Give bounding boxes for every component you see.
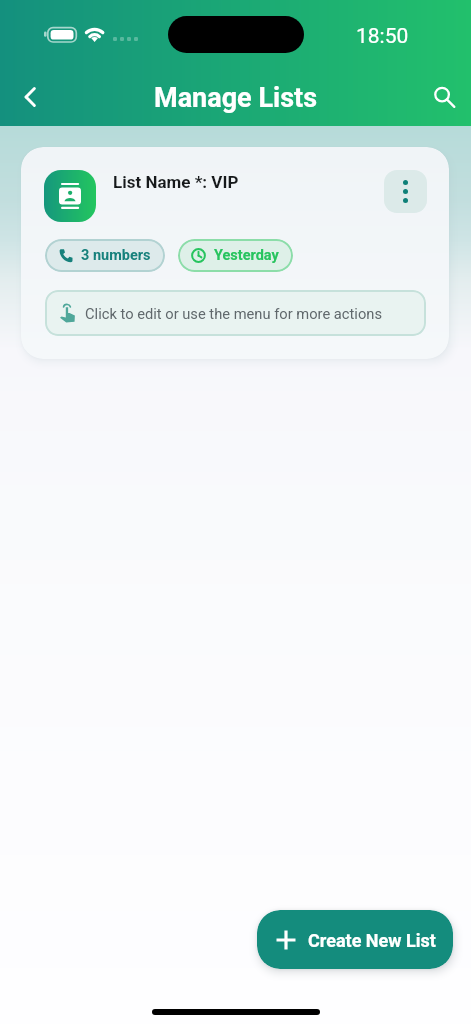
button[interactable]: Back bbox=[8, 75, 52, 119]
button[interactable]: Click to edit or use the menu for more a… bbox=[45, 290, 426, 336]
button[interactable]: More options bbox=[384, 170, 427, 213]
button[interactable]: List Name *: VIP bbox=[21, 147, 449, 359]
staticText: 3 numbers bbox=[81, 247, 151, 264]
staticText: Manage Lists bbox=[154, 82, 318, 114]
button[interactable]: Search bbox=[422, 75, 466, 119]
staticText: Click to edit or use the menu for more a… bbox=[85, 305, 382, 322]
button[interactable]: Yesterday bbox=[178, 239, 293, 272]
staticText: Create New List bbox=[308, 930, 436, 951]
staticText: List Name *: VIP bbox=[113, 172, 239, 192]
button[interactable]: Create New List bbox=[257, 910, 453, 969]
staticText: Yesterday bbox=[214, 247, 279, 264]
button[interactable]: 3 numbers bbox=[45, 239, 165, 272]
staticText: 18:50 bbox=[356, 24, 409, 49]
